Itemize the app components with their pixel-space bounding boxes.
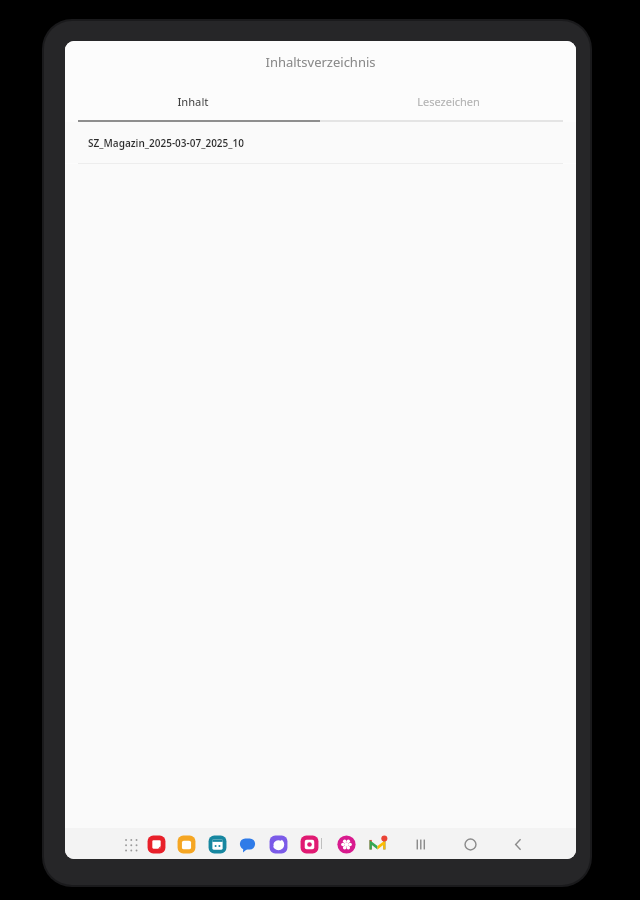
- button[interactable]: Messages: [235, 832, 259, 856]
- button[interactable]: Gmail: [365, 832, 389, 856]
- button[interactable]: Lesezeichen: [320, 83, 576, 120]
- button[interactable]: Home: [455, 830, 485, 858]
- staticText: Inhaltsverzeichnis: [265, 53, 376, 71]
- button[interactable]: Photos: [334, 832, 358, 856]
- staticText: SZ_Magazin_2025-03-07_2025_10: [88, 136, 244, 150]
- button[interactable]: Browser: [266, 832, 290, 856]
- button[interactable]: Camera: [297, 832, 321, 856]
- button[interactable]: Notes: [144, 832, 168, 856]
- staticText: Inhalt: [177, 94, 209, 109]
- button[interactable]: Apps: [119, 833, 141, 855]
- button[interactable]: Back: [503, 830, 533, 858]
- button[interactable]: Files: [174, 832, 198, 856]
- button[interactable]: Calendar: [205, 832, 229, 856]
- button[interactable]: SZ_Magazin_2025-03-07_2025_10: [65, 122, 576, 163]
- button[interactable]: Inhalt: [65, 83, 320, 120]
- button[interactable]: Recents: [406, 830, 436, 858]
- staticText: Lesezeichen: [417, 94, 480, 109]
